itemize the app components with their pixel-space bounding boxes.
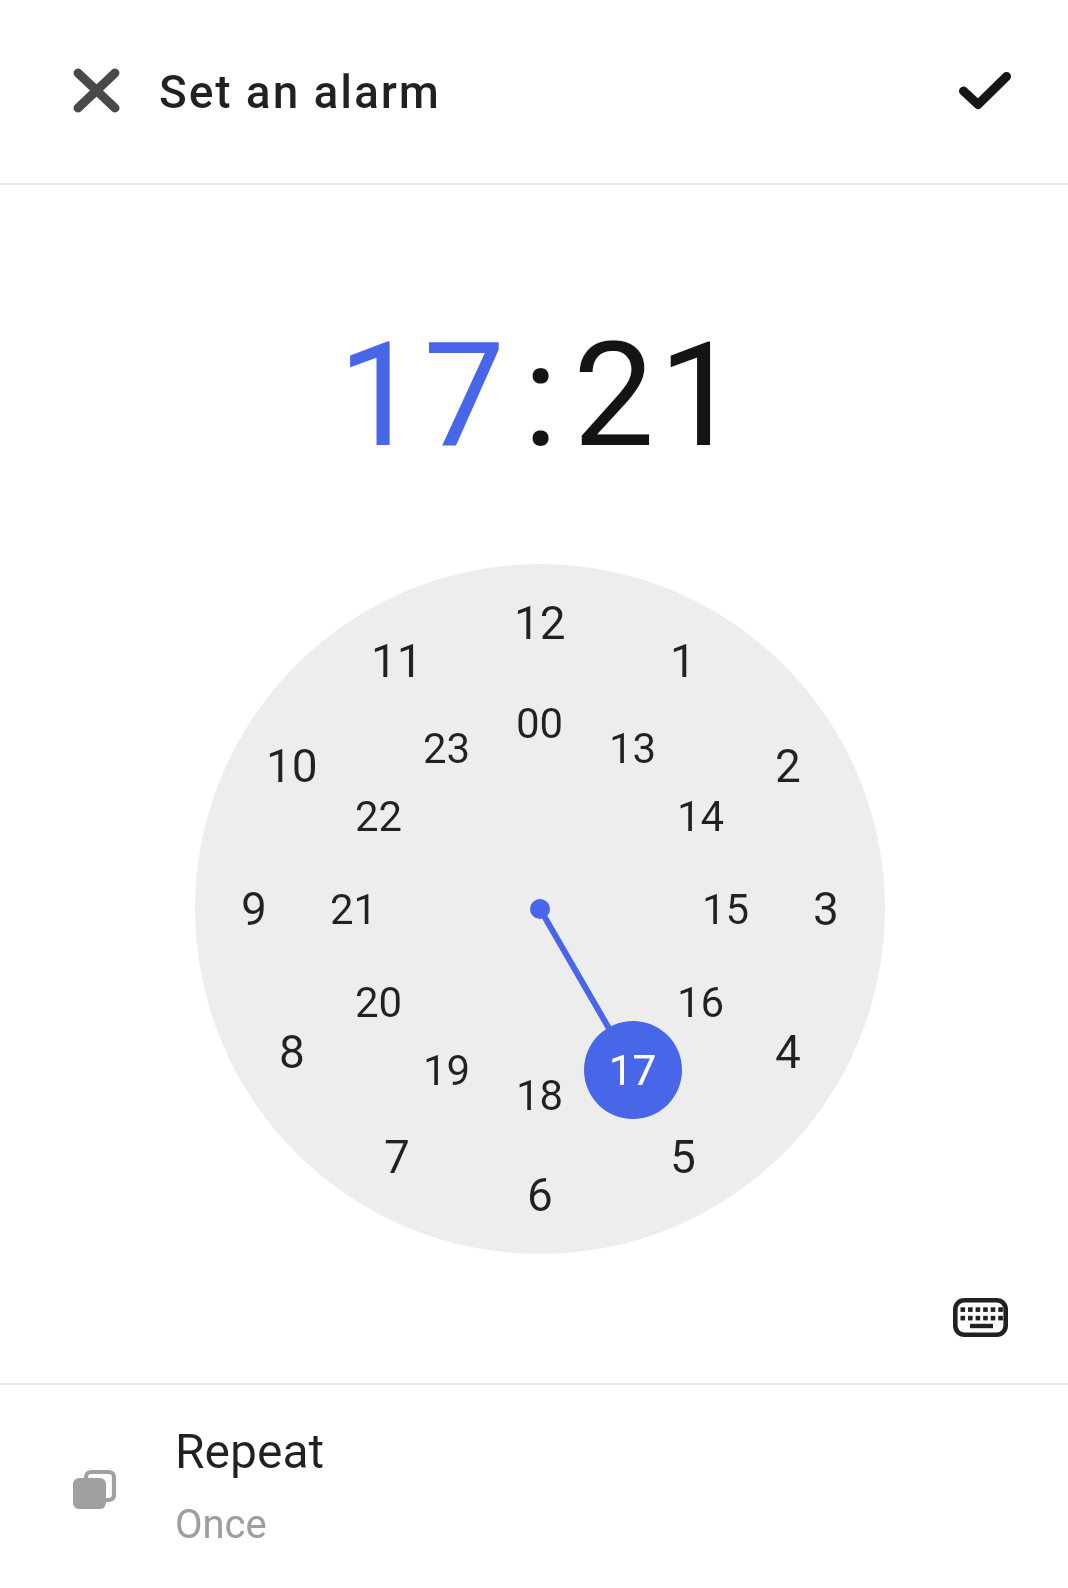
staticText: 5	[670, 1130, 696, 1184]
staticText: 9	[241, 882, 267, 936]
staticText: 15	[702, 885, 750, 934]
staticText: 8	[279, 1025, 305, 1079]
staticText: 6	[527, 1168, 553, 1222]
staticText: 10	[266, 739, 318, 793]
staticText: 21	[330, 885, 378, 934]
staticText: 4	[775, 1025, 801, 1079]
staticText: 23	[423, 724, 471, 773]
staticText: 14	[677, 792, 725, 841]
button[interactable]	[60, 54, 132, 126]
staticText: 17	[609, 1046, 657, 1095]
staticText: 17	[338, 310, 509, 480]
button[interactable]	[944, 1281, 1016, 1353]
button[interactable]	[949, 54, 1021, 126]
staticText: 16	[677, 978, 725, 1027]
staticText: 13	[609, 724, 657, 773]
staticText: 18	[516, 1071, 564, 1120]
staticText: 1	[670, 634, 696, 688]
staticText: 19	[423, 1046, 471, 1095]
staticText: 11	[371, 634, 423, 688]
staticText: 2	[775, 739, 801, 793]
staticText: 20	[355, 978, 403, 1027]
staticText: Set an alarm	[159, 65, 441, 119]
staticText: 7	[384, 1130, 410, 1184]
staticText: 3	[813, 882, 839, 936]
button[interactable]: Repeat	[0, 1385, 1068, 1588]
staticText: :	[523, 310, 559, 480]
staticText: 00	[516, 699, 564, 748]
staticText: Once	[175, 1501, 267, 1548]
staticText: 22	[355, 792, 403, 841]
staticText: 12	[514, 596, 566, 650]
button[interactable]: 1	[195, 564, 885, 1254]
staticText: Repeat	[175, 1423, 325, 1479]
staticText: 21	[573, 310, 744, 480]
